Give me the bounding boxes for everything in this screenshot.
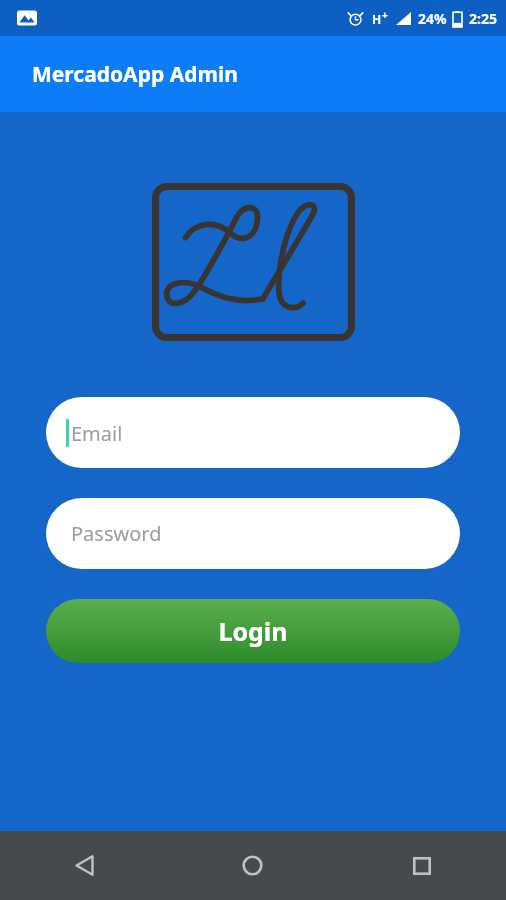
button[interactable]: Home: [168, 831, 337, 900]
button[interactable]: Recent apps: [337, 831, 506, 900]
button[interactable]: Password: [46, 498, 460, 569]
button[interactable]: Back: [0, 831, 168, 900]
staticText: Login: [218, 614, 288, 648]
staticText: 2:25: [469, 9, 497, 28]
button[interactable]: Email: [46, 397, 460, 468]
staticText: H: [372, 11, 382, 27]
staticText: Password: [71, 520, 162, 547]
staticText: +: [382, 8, 388, 22]
button[interactable]: Login: [46, 599, 460, 663]
staticText: MercadoApp Admin: [32, 60, 238, 89]
staticText: 24%: [418, 9, 447, 28]
staticText: Email: [71, 420, 123, 447]
